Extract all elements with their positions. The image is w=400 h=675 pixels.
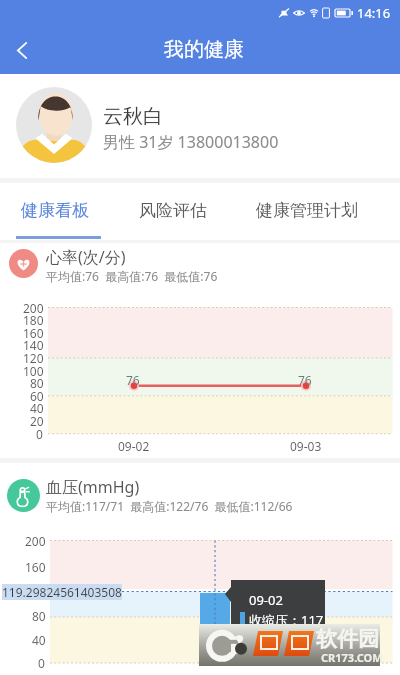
staticText: 我的健康 [164,37,244,62]
staticText: 120 [23,350,44,366]
staticText: 09-02 [249,591,283,609]
staticText: CR173.COM [321,650,383,665]
staticText: 收缩压：117 [249,611,324,629]
staticText: 200 [25,533,46,549]
staticText: 76 [126,372,140,388]
staticText: 40 [30,400,44,416]
staticText: 风险评估 [139,200,207,221]
staticText: 健康管理计划 [256,200,358,221]
button[interactable]: 健康看板 [21,183,89,237]
staticText: 40 [32,632,46,648]
button[interactable]: 云秋白 [0,74,400,178]
staticText: 0 [38,655,45,671]
staticText: 男性 31岁 13800013800 [103,131,279,153]
staticText: 健康看板 [21,200,89,221]
button[interactable]: 健康管理计划 [256,183,358,237]
staticText: 09-03 [290,438,322,454]
staticText: 160 [25,559,46,575]
staticText: 100 [23,363,44,379]
staticText: 60 [30,388,44,404]
staticText: 200 [23,300,44,316]
button[interactable]: Back [5,33,39,67]
staticText: 80 [30,375,44,391]
staticText: 云秋白 [103,104,163,129]
staticText: 20 [30,413,44,429]
staticText: 0 [36,426,43,442]
staticText: 76 [298,372,312,388]
staticText: 平均值:117/71 最高值:122/76 最低值:112/66 [46,498,293,514]
staticText: 180 [23,312,44,328]
button[interactable]: 风险评估 [139,183,207,237]
staticText: 血压(mmHg) [46,476,140,498]
staticText: 160 [23,325,44,341]
staticText: 软件园 [316,626,379,652]
staticText: 14:16 [357,4,391,22]
staticText: 心率(次/分) [46,246,126,268]
staticText: 119.29824561403508 [2,584,122,600]
staticText: 80 [32,608,46,624]
staticText: 平均值:76 最高值:76 最低值:76 [46,268,218,284]
staticText: 09-02 [118,438,150,454]
staticText: 140 [23,337,44,353]
